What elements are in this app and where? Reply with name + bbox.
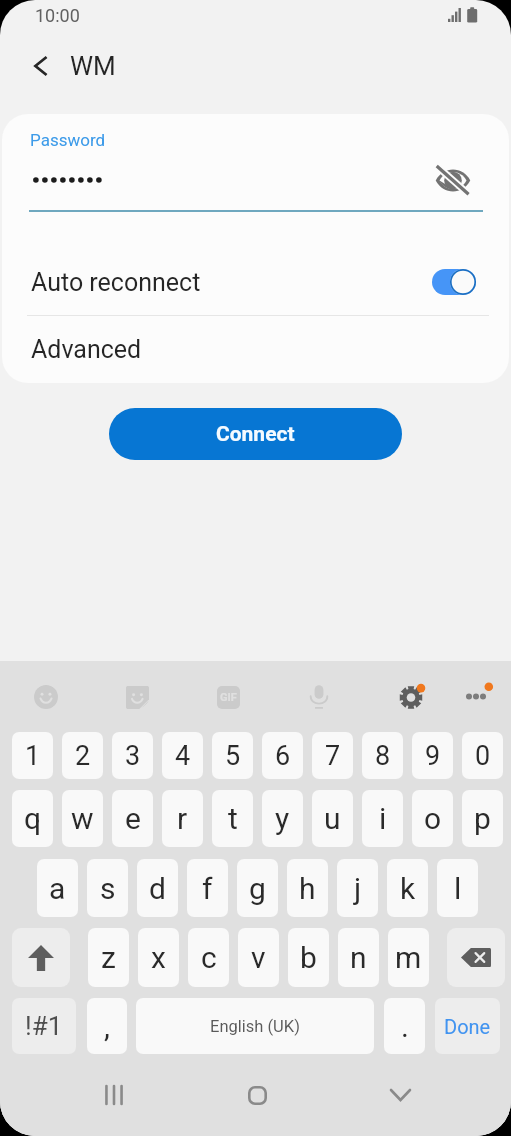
button[interactable]: Back — [19, 46, 59, 86]
button[interactable]: e — [112, 790, 153, 847]
staticText: GIF — [220, 691, 237, 704]
staticText: p — [474, 801, 491, 836]
staticText: Connect — [216, 422, 295, 447]
staticText: b — [300, 940, 317, 975]
button[interactable]: Stickers — [116, 676, 158, 718]
staticText: !#1 — [25, 1011, 63, 1041]
staticText: g — [249, 871, 266, 906]
button[interactable]: More options — [455, 675, 497, 717]
button[interactable]: x — [138, 928, 179, 987]
button[interactable]: a — [37, 859, 78, 917]
staticText: Password — [30, 130, 106, 150]
staticText: h — [299, 871, 316, 906]
staticText: x — [151, 940, 166, 975]
staticText: WM — [70, 51, 116, 81]
button[interactable]: Show password — [431, 158, 475, 202]
button[interactable]: n — [338, 928, 379, 987]
staticText: Done — [444, 1015, 491, 1038]
button[interactable]: m — [388, 928, 429, 987]
button[interactable]: . — [384, 998, 425, 1054]
staticText: i — [379, 801, 387, 836]
button[interactable]: s — [87, 859, 128, 917]
button[interactable]: 0 — [462, 732, 503, 779]
staticText: 4 — [175, 740, 191, 772]
button[interactable]: 2 — [62, 732, 103, 779]
button[interactable]: i — [362, 790, 403, 847]
staticText: s — [100, 871, 116, 906]
button[interactable]: 4 — [162, 732, 203, 779]
staticText: d — [149, 871, 166, 906]
staticText: o — [424, 801, 442, 836]
staticText: n — [350, 940, 367, 975]
staticText: u — [324, 801, 341, 836]
button[interactable]: !#1 — [12, 998, 76, 1054]
staticText: 9 — [425, 740, 441, 772]
button[interactable]: GIF — [207, 676, 249, 718]
button[interactable]: Voice input — [298, 676, 340, 718]
staticText: m — [395, 940, 422, 975]
button[interactable]: English (UK) — [136, 998, 374, 1054]
staticText: Auto reconnect — [31, 268, 201, 297]
button[interactable]: f — [187, 859, 228, 917]
button[interactable]: , — [87, 998, 127, 1054]
staticText: t — [228, 801, 238, 836]
button[interactable]: p — [462, 790, 503, 847]
button[interactable]: 6 — [262, 732, 303, 779]
button[interactable]: r — [162, 790, 203, 847]
staticText: z — [101, 940, 116, 975]
staticText: 8 — [375, 740, 391, 772]
button[interactable]: 8 — [362, 732, 403, 779]
button[interactable]: 3 — [112, 732, 153, 779]
staticText: l — [454, 871, 462, 906]
staticText: 1 — [25, 740, 41, 772]
staticText: y — [275, 801, 290, 836]
button[interactable]: t — [212, 790, 253, 847]
staticText: c — [201, 940, 217, 975]
button[interactable]: Auto reconnect toggle — [432, 268, 477, 296]
button[interactable]: g — [237, 859, 278, 917]
button[interactable]: v — [238, 928, 279, 987]
button[interactable]: d — [137, 859, 178, 917]
button[interactable]: 5 — [212, 732, 253, 779]
button[interactable]: y — [262, 790, 303, 847]
button[interactable]: Done — [435, 998, 500, 1054]
button[interactable]: w — [62, 790, 103, 847]
button[interactable]: Shift — [12, 928, 70, 987]
staticText: 0 — [475, 740, 491, 772]
button[interactable]: z — [88, 928, 129, 987]
button[interactable]: Recents — [84, 1054, 144, 1136]
staticText: 3 — [125, 740, 141, 772]
button[interactable]: Auto reconnect — [2, 255, 509, 309]
staticText: 5 — [225, 740, 241, 772]
button[interactable]: h — [287, 859, 328, 917]
staticText: v — [251, 940, 266, 975]
button[interactable]: q — [12, 790, 53, 847]
button[interactable]: Advanced — [2, 322, 509, 376]
button[interactable]: l — [437, 859, 478, 917]
staticText: j — [354, 871, 362, 906]
button[interactable]: Backspace — [447, 928, 505, 987]
button[interactable]: Settings — [390, 675, 432, 717]
button[interactable]: Home — [227, 1054, 287, 1136]
button[interactable]: 1 — [12, 732, 53, 779]
button[interactable]: o — [412, 790, 453, 847]
staticText: English (UK) — [210, 1017, 300, 1036]
staticText: e — [125, 801, 141, 836]
button[interactable]: Hide keyboard — [370, 1054, 430, 1136]
button[interactable]: k — [387, 859, 428, 917]
button[interactable]: j — [337, 859, 378, 917]
button[interactable]: 7 — [312, 732, 353, 779]
staticText: Advanced — [31, 335, 142, 364]
staticText: f — [202, 871, 213, 906]
staticText: . — [401, 1009, 409, 1044]
staticText: k — [400, 871, 416, 906]
button[interactable]: 9 — [412, 732, 453, 779]
staticText: w — [71, 801, 94, 836]
button[interactable]: Connect — [109, 408, 402, 460]
button[interactable]: b — [288, 928, 329, 987]
staticText: 7 — [325, 740, 341, 772]
button[interactable]: u — [312, 790, 353, 847]
button[interactable]: c — [188, 928, 229, 987]
staticText: 6 — [275, 740, 291, 772]
button[interactable]: Emoji — [25, 676, 67, 718]
